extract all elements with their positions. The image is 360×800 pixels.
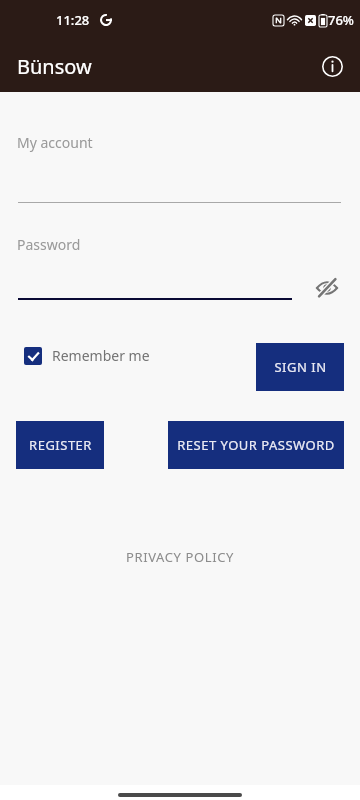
button[interactable]: Show password — [307, 268, 347, 308]
staticText: Password — [17, 235, 81, 254]
button[interactable]: PRIVACY POLICY — [116, 542, 244, 572]
staticText: SIGN IN — [274, 358, 327, 376]
button[interactable]: SIGN IN — [256, 343, 344, 391]
staticText: RESET YOUR PASSWORD — [177, 436, 335, 454]
staticText: My account — [17, 133, 93, 152]
staticText: 11:28 — [56, 11, 90, 29]
staticText: Bünsow — [17, 53, 92, 80]
staticText: 76% — [328, 11, 354, 29]
staticText: REGISTER — [29, 436, 92, 454]
staticText: Remember me — [52, 346, 150, 365]
staticText: PRIVACY POLICY — [126, 548, 234, 566]
button[interactable]: REGISTER — [16, 421, 104, 469]
button[interactable]: Remember me — [18, 342, 156, 369]
button[interactable]: Information — [312, 46, 352, 86]
button[interactable]: RESET YOUR PASSWORD — [168, 421, 344, 469]
